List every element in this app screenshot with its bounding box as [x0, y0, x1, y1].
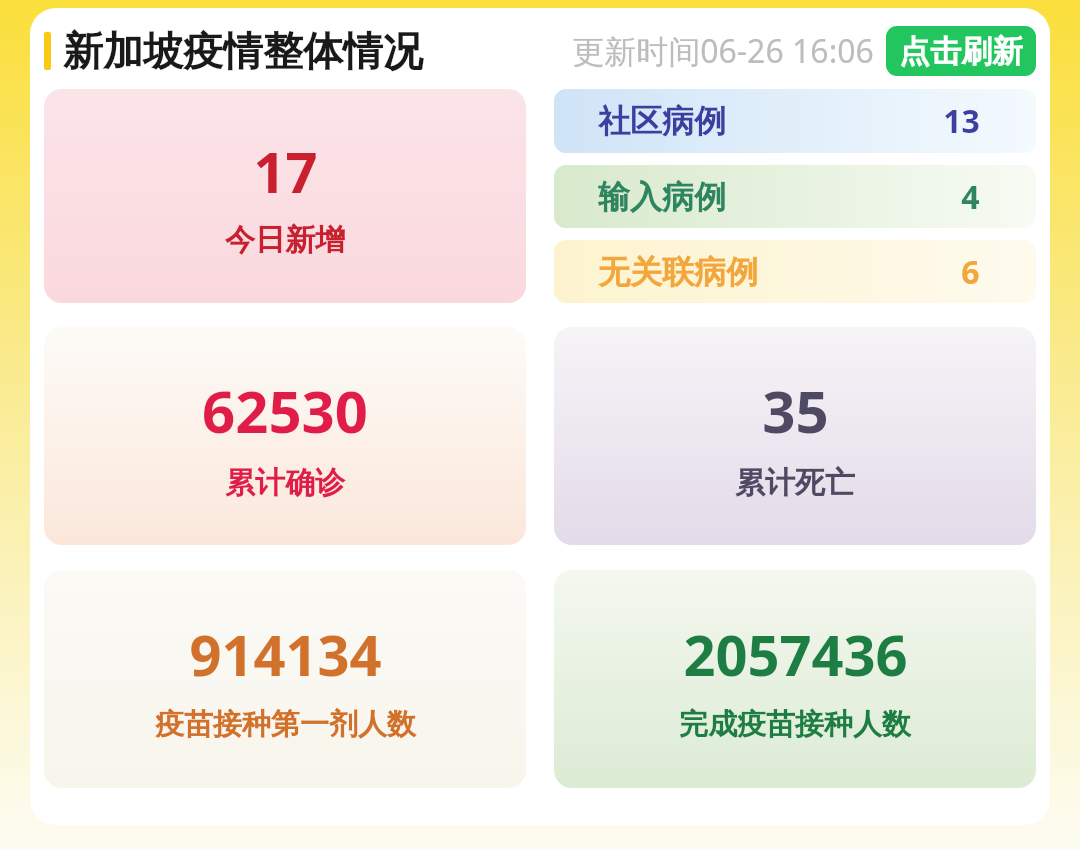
button[interactable]: 62530 — [44, 327, 526, 545]
button[interactable]: 输入病例 — [554, 165, 1036, 228]
staticText: 完成疫苗接种人数 — [679, 706, 911, 743]
staticText: 无关联病例 — [598, 252, 758, 292]
button[interactable]: 17 — [44, 89, 526, 303]
button[interactable]: 2057436 — [554, 570, 1036, 788]
staticText: 17 — [253, 133, 318, 209]
staticText: 62530 — [202, 371, 368, 450]
staticText: 社区病例 — [598, 101, 726, 141]
staticText: 累计死亡 — [735, 464, 855, 502]
staticText: 疫苗接种第一剂人数 — [155, 706, 416, 743]
staticText: 2057436 — [683, 616, 908, 692]
staticText: 35 — [762, 371, 829, 450]
button[interactable]: 社区病例 — [554, 89, 1036, 153]
button[interactable]: 914134 — [44, 570, 526, 788]
staticText: 新加坡疫情整体情况 — [63, 26, 423, 76]
button[interactable]: 无关联病例 — [554, 240, 1036, 303]
staticText: 6 — [961, 250, 980, 294]
button[interactable]: 35 — [554, 327, 1036, 545]
staticText: 13 — [943, 99, 980, 143]
staticText: 点击刷新 — [899, 32, 1023, 70]
staticText: 914134 — [189, 616, 382, 692]
staticText: 4 — [961, 175, 980, 219]
staticText: 今日新增 — [225, 221, 345, 259]
staticText: 更新时间06-26 16:06 — [572, 29, 874, 73]
staticText: 输入病例 — [598, 177, 726, 217]
staticText: 累计确诊 — [225, 464, 345, 502]
button[interactable]: 点击刷新 — [886, 26, 1036, 76]
